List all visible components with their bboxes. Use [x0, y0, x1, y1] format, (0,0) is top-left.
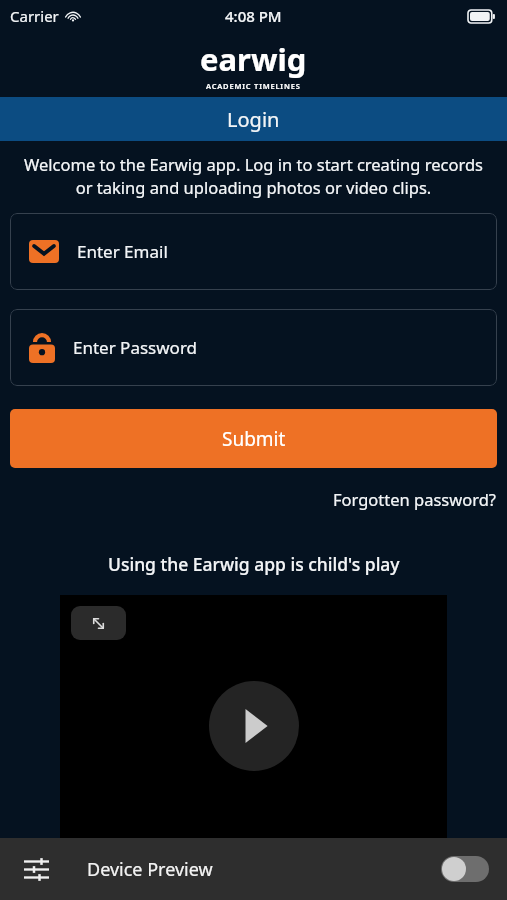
button[interactable]: Forgotten password?	[322, 486, 507, 512]
staticText: Device Preview	[87, 857, 213, 882]
staticText: Forgotten password?	[333, 488, 496, 510]
staticText: Enter Password	[73, 336, 198, 359]
staticText: Using the Earwig app is child's play	[108, 552, 400, 576]
button[interactable]: Toggle device preview	[441, 856, 489, 882]
button[interactable]: Settings	[18, 851, 54, 887]
staticText: 4:08 PM	[225, 6, 282, 26]
staticText: Submit	[222, 426, 286, 452]
staticText: ACADEMIC TIMELINES	[206, 81, 301, 91]
staticText: earwig	[200, 38, 307, 80]
button[interactable]: Enter Email	[10, 213, 497, 290]
button[interactable]: Fullscreen	[71, 606, 126, 640]
button[interactable]: Play	[209, 681, 299, 771]
staticText: Carrier	[10, 6, 59, 26]
staticText: Enter Email	[77, 240, 168, 263]
button[interactable]: Submit	[10, 409, 497, 468]
staticText: Login	[227, 106, 280, 133]
staticText: Welcome to the Earwig app. Log in to sta…	[18, 153, 489, 199]
button[interactable]: Enter Password	[10, 309, 497, 386]
